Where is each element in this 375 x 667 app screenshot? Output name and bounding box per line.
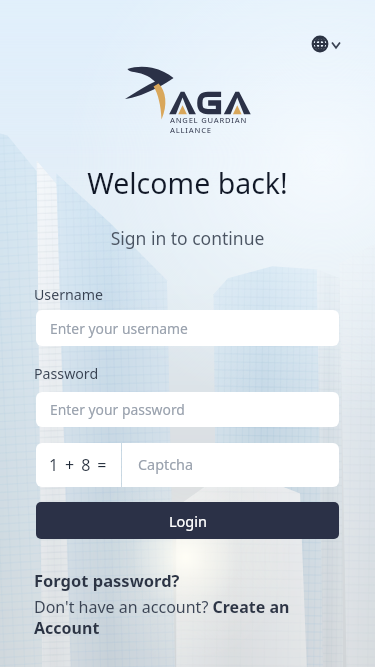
button[interactable]: Captcha	[122, 443, 339, 487]
staticText: Captcha	[138, 455, 194, 475]
staticText: Login	[169, 511, 207, 531]
staticText: 1 + 8 =	[49, 454, 108, 476]
staticText: Don't have an account? Create an Account	[34, 596, 296, 639]
staticText: Sign in to continue	[0, 226, 375, 250]
staticText: Welcome back!	[0, 164, 375, 203]
staticText: Username	[34, 285, 104, 304]
button[interactable]: Enter your password	[36, 392, 339, 427]
staticText: ALLIANCE	[170, 125, 212, 135]
button[interactable]: Enter your username	[36, 310, 339, 346]
staticText: Enter your username	[50, 319, 188, 338]
button[interactable]: Select language	[309, 33, 344, 55]
staticText: Enter your password	[50, 400, 185, 419]
staticText: Password	[34, 364, 99, 383]
button[interactable]: Forgot password?	[34, 569, 180, 591]
staticText: ANGEL GUARDIAN	[170, 115, 248, 125]
button[interactable]: Login	[36, 502, 339, 539]
